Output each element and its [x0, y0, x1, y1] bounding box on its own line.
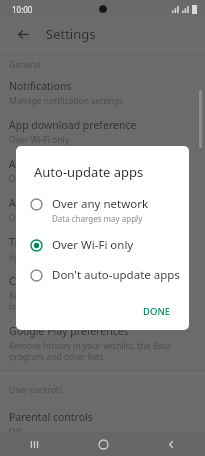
- staticText: General: [9, 59, 41, 71]
- button[interactable]: Theme: [0, 235, 205, 263]
- staticText: Over Wi-Fi only: [9, 134, 70, 146]
- staticText: Over any network: [52, 196, 149, 212]
- staticText: DONE: [143, 305, 171, 318]
- staticText: Over Wi-Fi only: [9, 173, 70, 185]
- staticText: Manage notification settings: [9, 95, 123, 107]
- staticText: App download preference: [9, 118, 137, 132]
- button[interactable]: Back: [137, 432, 205, 456]
- staticText: Auto-play video: [9, 196, 86, 210]
- button[interactable]: DONE: [135, 301, 179, 322]
- staticText: Remove history in your wishlist, the Bet…: [9, 340, 196, 362]
- staticText: Google Play preferences: [9, 324, 129, 338]
- button[interactable]: App download preference: [0, 118, 205, 146]
- staticText: Over Wi-Fi only: [52, 237, 134, 253]
- button[interactable]: Don't auto-update apps: [16, 265, 189, 285]
- button[interactable]: Auto-update apps: [0, 157, 205, 185]
- button[interactable]: Over Wi-Fi only: [16, 235, 189, 255]
- button[interactable]: Auto-play video: [0, 196, 205, 224]
- button[interactable]: Over any network: [16, 194, 189, 226]
- button[interactable]: Clear local search history: [0, 274, 205, 312]
- staticText: User controls: [9, 384, 63, 396]
- button[interactable]: Google Play preferences: [0, 324, 205, 362]
- staticText: Parental controls: [9, 410, 93, 424]
- staticText: System default: [9, 251, 69, 263]
- staticText: Remove searches that you have performed …: [9, 290, 196, 312]
- button[interactable]: Recent apps: [0, 432, 69, 456]
- button[interactable]: Notifications: [0, 79, 205, 107]
- staticText: Theme: [9, 235, 43, 249]
- staticText: 10:00: [12, 4, 33, 15]
- staticText: Settings: [46, 25, 96, 43]
- button[interactable]: Parental controls: [0, 410, 205, 438]
- button[interactable]: Back: [10, 21, 36, 47]
- staticText: Notifications: [9, 79, 72, 93]
- staticText: Clear local search history: [9, 274, 132, 288]
- staticText: Data charges may apply: [52, 213, 143, 224]
- staticText: Auto-update apps: [9, 157, 98, 171]
- staticText: Auto-update apps: [34, 163, 144, 181]
- staticText: Over Wi-Fi only: [9, 212, 70, 224]
- staticText: Don't auto-update apps: [52, 267, 180, 283]
- button[interactable]: Home: [69, 432, 137, 456]
- staticText: Off: [9, 426, 22, 438]
